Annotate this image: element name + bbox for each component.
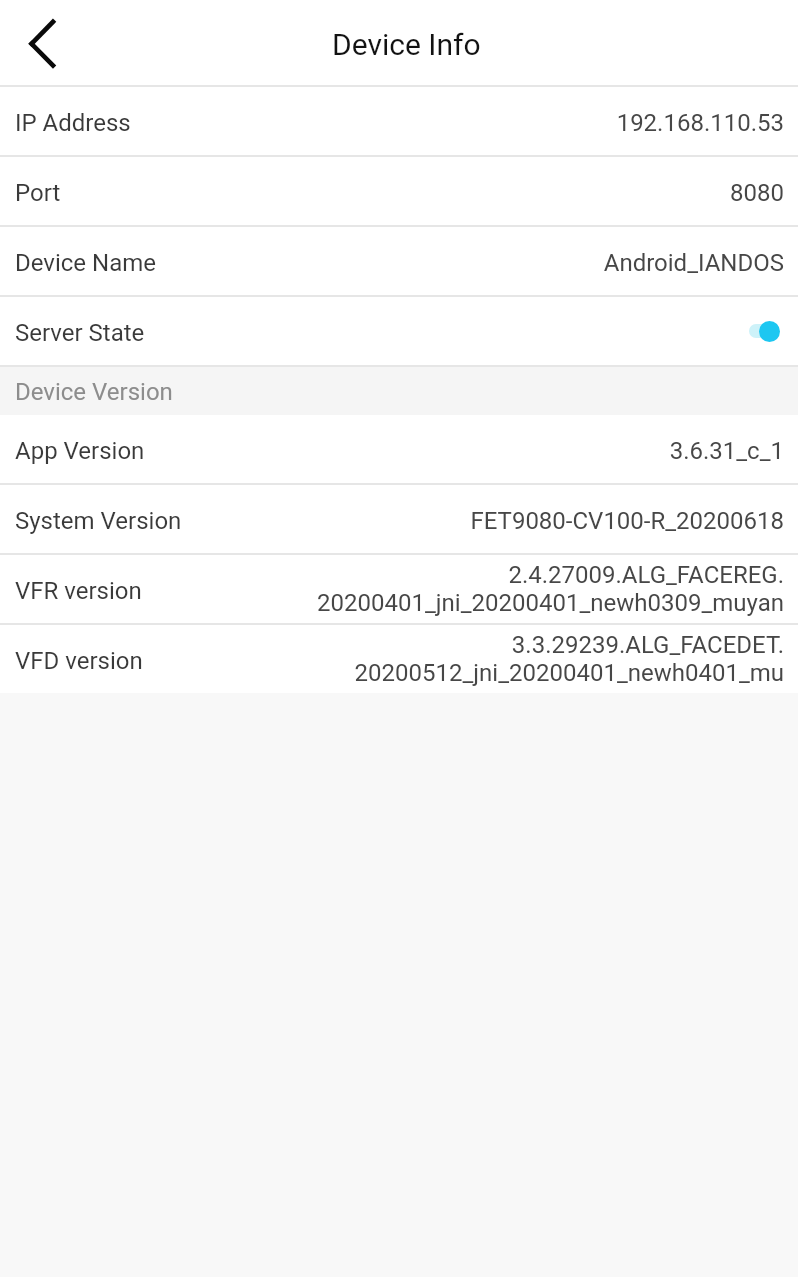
- button[interactable]: App Version: [0, 415, 798, 483]
- button[interactable]: Server State, on: [749, 314, 780, 348]
- staticText: VFR version: [15, 577, 142, 605]
- button[interactable]: IP Address: [0, 87, 798, 155]
- button[interactable]: Back: [0, 0, 84, 85]
- button[interactable]: VFD version: [0, 625, 798, 693]
- staticText: Server State: [15, 319, 145, 347]
- button[interactable]: Server State: [0, 297, 798, 365]
- button[interactable]: Port: [0, 157, 798, 225]
- staticText: 8080: [730, 179, 784, 207]
- staticText: Android_IANDOS: [603, 249, 784, 277]
- staticText: Device Name: [15, 249, 156, 277]
- staticText: VFD version: [15, 647, 143, 675]
- button[interactable]: System Version: [0, 485, 798, 553]
- button[interactable]: VFR version: [0, 555, 798, 623]
- staticText: Port: [15, 179, 61, 207]
- staticText: App Version: [15, 437, 145, 465]
- staticText: FET9080-CV100-R_20200618: [470, 507, 784, 535]
- button[interactable]: Device Name: [0, 227, 798, 295]
- staticText: 192.168.110.53: [616, 109, 784, 137]
- staticText: Device Version: [15, 378, 173, 406]
- staticText: 3.6.31_c_1: [669, 437, 784, 465]
- staticText: System Version: [15, 507, 182, 535]
- staticText: IP Address: [15, 109, 131, 137]
- staticText: 2.4.27009.ALG_FACEREG. 20200401_jni_2020…: [317, 561, 784, 617]
- staticText: Device Info: [332, 27, 481, 62]
- staticText: 3.3.29239.ALG_FACEDET. 20200512_jni_2020…: [354, 631, 784, 687]
